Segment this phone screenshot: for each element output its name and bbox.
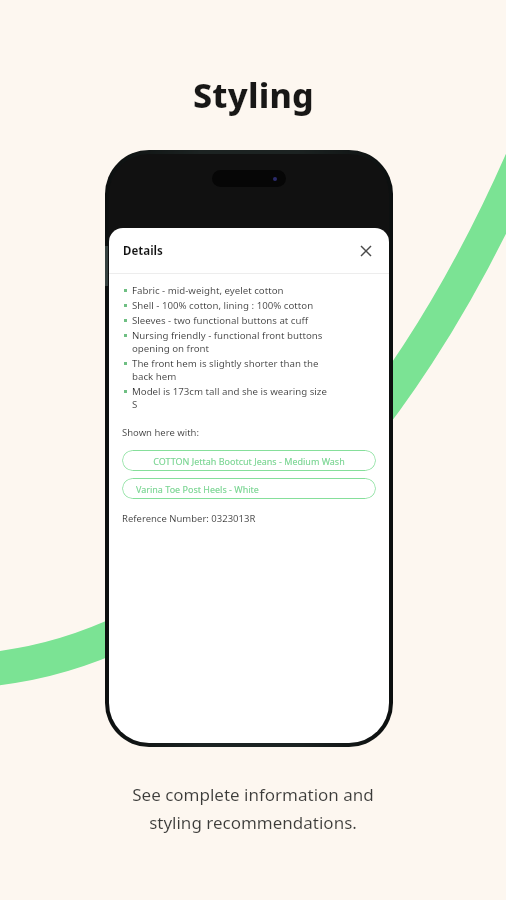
staticText: Shell - 100% cotton, lining : 100% cotto… xyxy=(132,299,314,312)
staticText: Fabric - mid-weight, eyelet cotton xyxy=(132,284,284,297)
staticText: See complete information and xyxy=(132,783,374,806)
button[interactable]: COTTON Jettah Bootcut Jeans - Medium Was… xyxy=(122,450,376,471)
staticText: Nursing friendly - functional front butt… xyxy=(132,329,323,355)
staticText: Varina Toe Post Heels - White xyxy=(136,483,259,495)
staticText: Details xyxy=(123,243,163,259)
staticText: Shown here with: xyxy=(122,426,200,439)
staticText: The front hem is slightly shorter than t… xyxy=(132,357,319,383)
button[interactable]: Varina Toe Post Heels - White xyxy=(122,478,376,499)
staticText: Sleeves - two functional buttons at cuff xyxy=(132,314,309,327)
staticText: Styling xyxy=(193,72,314,118)
staticText: Model is 173cm tall and she is wearing s… xyxy=(132,385,327,411)
button[interactable]: Close xyxy=(355,240,377,262)
staticText: COTTON Jettah Bootcut Jeans - Medium Was… xyxy=(153,455,345,467)
staticText: styling recommendations. xyxy=(149,811,357,834)
staticText: Reference Number: 0323013R xyxy=(122,512,256,525)
